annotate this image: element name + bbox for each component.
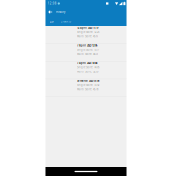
- staticText: LIST: [49, 20, 53, 23]
- staticText: Multi Score: 46.01: [77, 52, 98, 56]
- button[interactable]: Back: [47, 8, 54, 16]
- staticText: Single Score: 13.71: [77, 48, 99, 51]
- button[interactable]: CHARTS: [57, 17, 74, 25]
- staticText: Multi Score: 52.09: [77, 70, 98, 73]
- staticText: 12 April 2023 11:19: [77, 26, 98, 29]
- button[interactable]: LIST: [46, 17, 57, 25]
- staticText: Single Score: 14.05: [77, 66, 99, 69]
- staticText: Single Score: 13.92: [77, 83, 99, 87]
- staticText: Multi Score: 45.18: [77, 88, 98, 91]
- staticText: 7 April 2023 13:06: [77, 44, 97, 47]
- staticText: Single Score: 12.25: [77, 30, 99, 34]
- staticText: History: [56, 10, 65, 14]
- button[interactable]: 12 April 2023 11:19: [45, 26, 126, 43]
- staticText: 30 March 2023 07:56: [77, 79, 99, 83]
- staticText: Multi Score: 45.61: [77, 34, 98, 38]
- button[interactable]: 30 March 2023 07:56: [45, 79, 126, 96]
- staticText: 7 April 2023 10:44: [77, 61, 97, 65]
- staticText: CHARTS: [60, 20, 70, 23]
- staticText: 12:08: [48, 2, 57, 5]
- button[interactable]: 7 April 2023 10:44: [45, 61, 126, 79]
- button[interactable]: 7 April 2023 13:06: [45, 44, 126, 61]
